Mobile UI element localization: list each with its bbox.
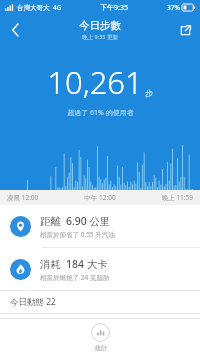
button[interactable]: Share (170, 15, 200, 45)
staticText: 今日動態 22 (10, 296, 56, 308)
button[interactable]: 消耗 (0, 248, 200, 290)
button[interactable]: 距離 (0, 205, 200, 247)
staticText: 超過了 61% 的使用者 (67, 108, 134, 118)
staticText: 晚上 11:59 (131, 193, 193, 202)
staticText: 6.90 公里 (66, 214, 111, 228)
staticText: 統計 (95, 344, 107, 352)
staticText: 4G (53, 3, 62, 12)
staticText: 距離 (40, 215, 61, 228)
staticText: 步 (145, 88, 153, 98)
staticText: 中午 12:00 (69, 193, 131, 202)
staticText: 消耗 (40, 258, 61, 271)
staticText: 凌晨 12:00 (7, 193, 69, 202)
button[interactable]: 統計 (77, 321, 124, 354)
staticText: 相當於燃燒了 24 克脂肪 (40, 273, 110, 282)
staticText: 184 大卡 (66, 257, 108, 271)
staticText: 10,261 (47, 61, 143, 103)
staticText: 今日步數 (79, 19, 121, 32)
staticText: 晚上 9:35 更新 (82, 33, 118, 41)
staticText: 相當於節省了 0.55 升汽油 (40, 230, 115, 239)
staticText: 台灣大哥大 (17, 4, 50, 12)
staticText: 下午9:35 (100, 3, 128, 13)
button[interactable]: Back (0, 15, 30, 45)
staticText: 37% (167, 3, 180, 12)
